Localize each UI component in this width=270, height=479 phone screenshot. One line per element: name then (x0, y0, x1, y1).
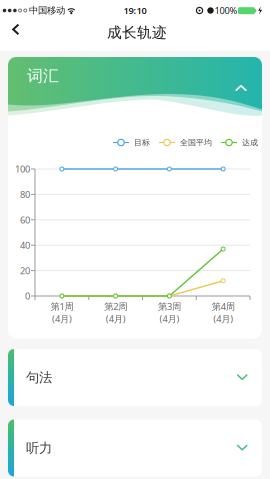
button[interactable]: 听力 (8, 419, 262, 476)
button[interactable]: 句法 (8, 349, 262, 406)
staticText: 第3周 (158, 300, 181, 312)
button[interactable]: Collapse 词汇 (230, 79, 252, 97)
staticText: 100 (15, 163, 30, 175)
staticText: (4月) (159, 312, 179, 325)
staticText: 100% (214, 4, 237, 17)
staticText: 听力 (26, 440, 52, 456)
staticText: 80 (20, 188, 30, 201)
staticText: (4月) (213, 312, 233, 325)
staticText: 达成 (242, 138, 258, 147)
staticText: 20 (20, 264, 30, 277)
staticText: (4月) (106, 312, 126, 325)
staticText: 19:10 (123, 4, 146, 17)
staticText: 全国平均 (180, 138, 212, 147)
staticText: 词汇 (27, 66, 59, 86)
staticText: 中国移动 (29, 5, 65, 16)
staticText: (4月) (52, 312, 72, 325)
staticText: 0 (25, 290, 30, 302)
staticText: 40 (20, 239, 30, 251)
staticText: 60 (20, 214, 30, 226)
staticText: 目标 (134, 138, 150, 147)
staticText: 成长轨迹 (107, 23, 167, 41)
button[interactable]: Back (4, 20, 28, 38)
staticText: 第2周 (104, 300, 127, 312)
staticText: 第1周 (50, 300, 73, 312)
staticText: 第4周 (212, 300, 235, 312)
staticText: 句法 (26, 369, 52, 386)
